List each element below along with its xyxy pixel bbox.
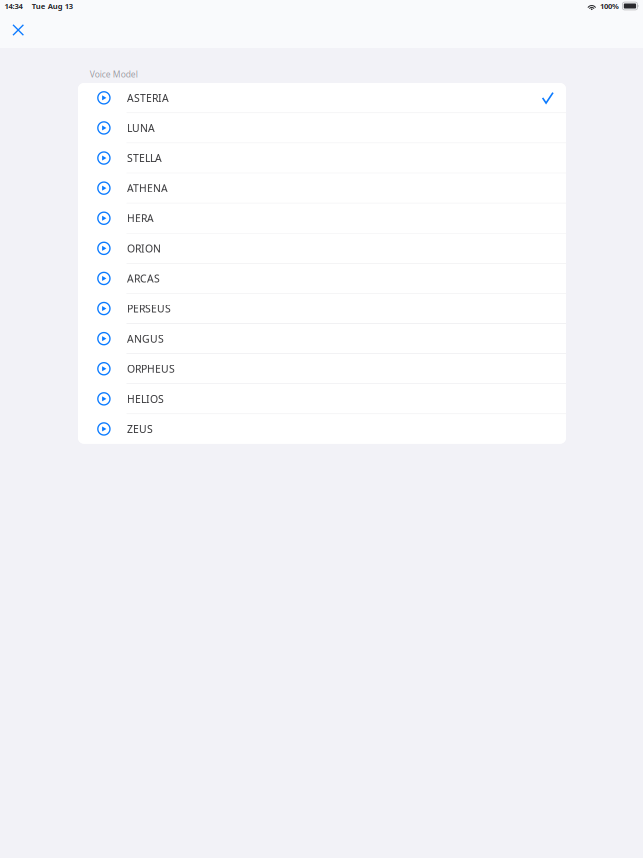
button[interactable]: ATHENA [78,173,566,203]
button[interactable]: ARCAS [78,264,566,293]
staticText: ASTERIA [127,91,169,105]
staticText: 100% [600,1,619,11]
staticText: ORION [127,241,161,255]
button[interactable]: HERA [78,203,566,233]
button[interactable]: ANGUS [78,324,566,353]
button[interactable]: Close [5,17,31,43]
staticText: HELIOS [127,392,164,406]
button[interactable]: HELIOS [78,384,566,413]
staticText: Voice Model [90,68,138,80]
button[interactable]: ASTERIA [78,83,566,112]
button[interactable]: PERSEUS [78,294,566,323]
staticText: STELLA [127,151,162,165]
button[interactable]: STELLA [78,143,566,173]
staticText: ATHENA [127,181,168,195]
staticText: HERA [127,211,154,225]
staticText: LUNA [127,121,155,135]
button[interactable]: ORION [78,234,566,263]
button[interactable]: LUNA [78,113,566,143]
staticText: ORPHEUS [127,362,175,376]
staticText: ANGUS [127,332,164,346]
staticText: ARCAS [127,271,160,286]
staticText: Tue Aug 13 [32,1,73,11]
staticText: PERSEUS [127,301,171,316]
button[interactable]: ORPHEUS [78,354,566,383]
staticText: ZEUS [127,422,153,436]
staticText: 14:34 [4,1,22,11]
button[interactable]: ZEUS [78,414,566,444]
